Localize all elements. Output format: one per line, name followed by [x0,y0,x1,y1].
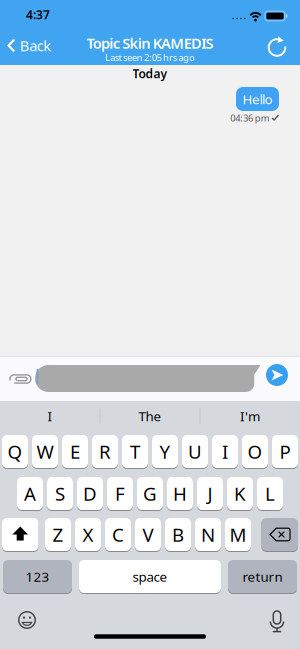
button[interactable]: N [195,517,221,551]
button[interactable]: G [137,476,163,510]
button[interactable]: C [105,517,131,551]
staticText: T [130,439,140,464]
staticText: 123 [25,568,49,585]
button[interactable]: V [135,517,161,551]
button[interactable]: A [17,476,43,510]
staticText: space [132,568,167,585]
staticText: N [201,522,215,547]
button[interactable] [265,34,289,58]
button[interactable] [261,517,298,551]
staticText: Z [52,522,63,547]
button[interactable]: D [77,476,103,510]
staticText: I [222,439,228,464]
staticText: Q [7,439,22,464]
staticText: C [112,522,124,547]
button[interactable] [6,366,32,392]
staticText: 04:36 pm [230,112,270,124]
staticText: return [242,568,282,585]
staticText: M [229,522,246,547]
button[interactable]: The [105,403,195,429]
staticText: I [47,407,52,425]
button[interactable]: R [92,434,118,468]
staticText: Today [132,65,167,81]
button[interactable]: return [228,559,297,593]
staticText: 4:37 [26,6,50,22]
staticText: I'm [240,407,260,425]
staticText: W [36,439,53,464]
button[interactable]: F [107,476,133,510]
staticText: Last seen 2:05 hrs ago [105,51,195,64]
staticText: O [247,439,262,464]
staticText: F [115,481,125,506]
button[interactable]: X [75,517,101,551]
staticText: A [24,481,36,506]
button[interactable]: I [212,434,238,468]
button[interactable]: I [5,403,95,429]
staticText: J [207,481,212,506]
staticText: Hello [242,90,272,108]
button[interactable] [2,517,38,551]
button[interactable]: I'm [205,403,295,429]
button[interactable]: J [197,476,223,510]
button[interactable]: Y [152,434,178,468]
staticText: G [143,481,157,506]
staticText: U [188,439,202,464]
button[interactable]: E [62,434,88,468]
staticText: X [82,522,93,547]
staticText: D [83,481,97,506]
staticText: S [55,481,65,506]
staticText: Topic Skin KAMEDIS [86,33,214,53]
button[interactable]: 123 [3,559,72,593]
staticText: L [265,481,275,506]
staticText: P [279,439,290,464]
staticText: K [234,481,246,506]
staticText: V [142,522,153,547]
button[interactable]: O [242,434,268,468]
staticText: The [138,407,161,425]
button[interactable]: space [79,559,221,593]
button[interactable]: P [272,434,298,468]
button[interactable]: L [257,476,283,510]
staticText: R [99,439,111,464]
button[interactable]: U [182,434,208,468]
button[interactable] [265,609,289,635]
staticText: H [173,481,187,506]
button[interactable] [266,364,288,386]
button[interactable]: B [165,517,191,551]
button[interactable] [15,608,39,632]
button[interactable]: Z [45,517,71,551]
button[interactable]: Back [3,34,55,56]
button[interactable]: T [122,434,148,468]
button[interactable]: H [167,476,193,510]
staticText: E [70,439,80,464]
staticText: B [172,522,184,547]
staticText: Y [159,439,170,464]
button[interactable]: Q [2,434,28,468]
button[interactable]: W [32,434,58,468]
button[interactable]: S [47,476,73,510]
staticText: Back [20,36,51,55]
button[interactable]: K [227,476,253,510]
button[interactable]: M [225,517,251,551]
